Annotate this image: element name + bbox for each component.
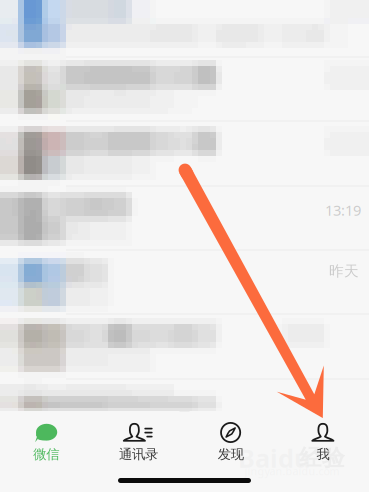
staticText: 我 xyxy=(316,446,329,462)
staticText: 微信 xyxy=(33,446,59,462)
button[interactable]: 我 xyxy=(277,411,369,492)
staticText: 经验 xyxy=(299,444,345,472)
staticText: 发现 xyxy=(218,446,244,462)
button[interactable]: 发现 xyxy=(184,411,277,492)
staticText: 通讯录 xyxy=(119,446,158,462)
staticText: 13:19 xyxy=(325,200,361,220)
button[interactable]: 微信 xyxy=(0,411,92,492)
staticText: Baidu xyxy=(238,441,310,475)
button[interactable]: 通讯录 xyxy=(92,411,184,492)
staticText: 昨天 xyxy=(329,262,359,280)
